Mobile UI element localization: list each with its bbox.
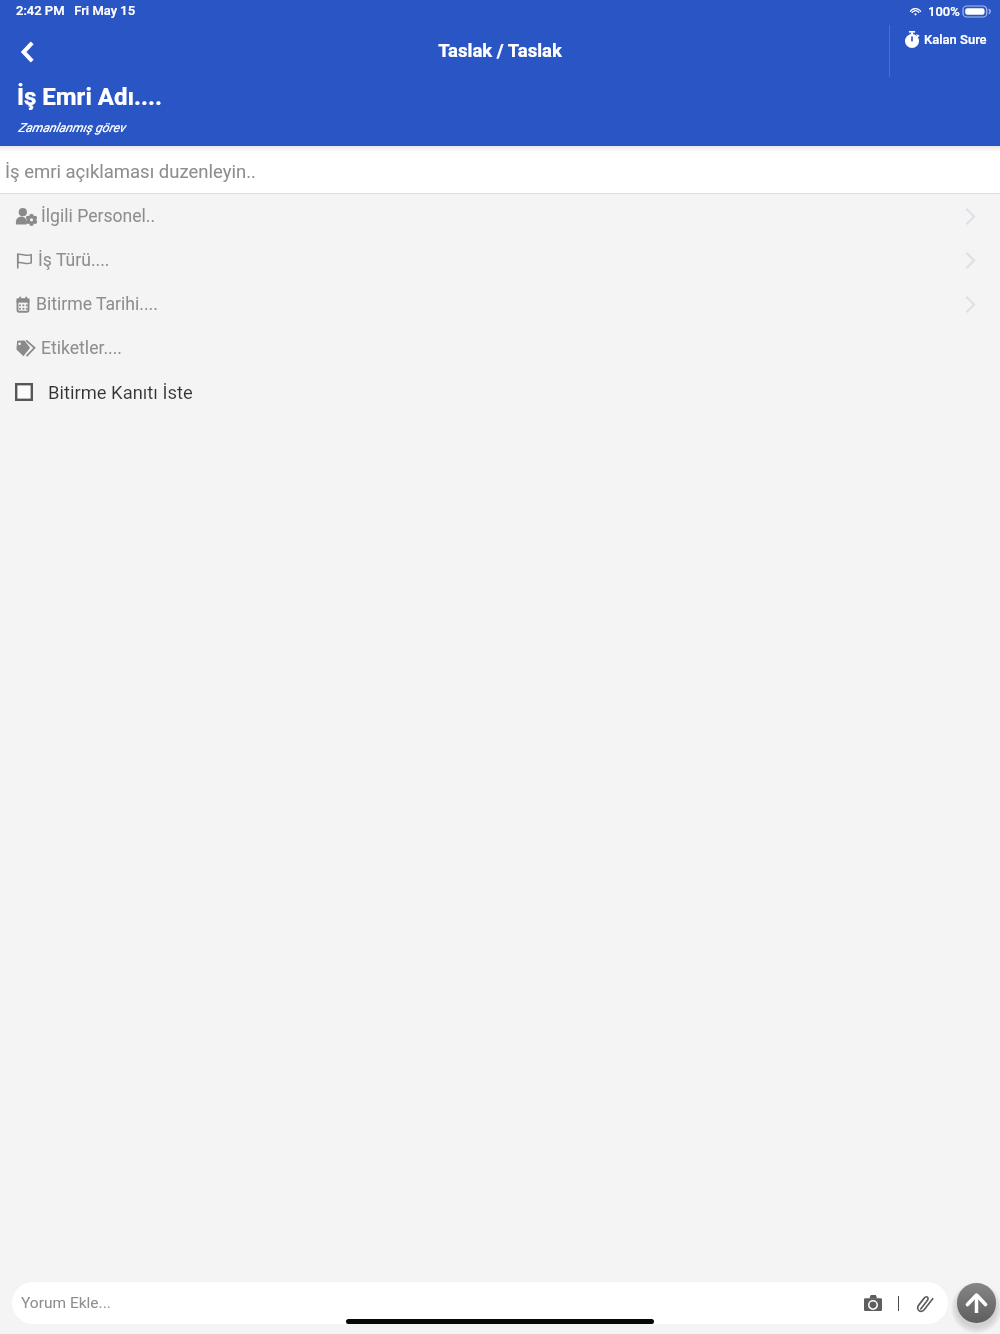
- button[interactable]: Kalan Sure: [905, 31, 987, 47]
- staticText: Taslak / Taslak: [0, 40, 1000, 62]
- staticText: Etiketler....: [41, 338, 122, 359]
- button[interactable]: Yorum Ekle...: [12, 1282, 948, 1324]
- button[interactable]: İş emri açıklaması duzenleyin..: [0, 146, 1000, 193]
- button[interactable]: Back: [7, 31, 48, 72]
- button[interactable]: Bitirme Kanıtı İste: [0, 370, 1000, 414]
- button[interactable]: Etiketler....: [0, 326, 1000, 370]
- button[interactable]: Take photo: [859, 1289, 887, 1317]
- staticText: İş Emri Adı....: [17, 83, 162, 111]
- staticText: İlgili Personel..: [41, 206, 156, 227]
- button[interactable]: İş Türü....: [0, 238, 1000, 282]
- staticText: İş Türü....: [38, 250, 110, 271]
- button[interactable]: Bitirme Tarihi....: [0, 282, 1000, 326]
- staticText: 2:42 PM Fri May 15: [16, 3, 136, 18]
- staticText: Yorum Ekle...: [21, 1294, 111, 1312]
- staticText: Bitirme Tarihi....: [36, 294, 158, 315]
- button[interactable]: Send: [957, 1283, 996, 1323]
- button[interactable]: İlgili Personel..: [0, 194, 1000, 238]
- staticText: 100%: [928, 4, 960, 19]
- button[interactable]: Attach file: [910, 1289, 938, 1317]
- staticText: Bitirme Kanıtı İste: [48, 382, 193, 404]
- staticText: İş emri açıklaması duzenleyin..: [5, 161, 256, 183]
- staticText: Zamanlanmış görev: [18, 120, 125, 135]
- staticText: Kalan Sure: [924, 32, 987, 47]
